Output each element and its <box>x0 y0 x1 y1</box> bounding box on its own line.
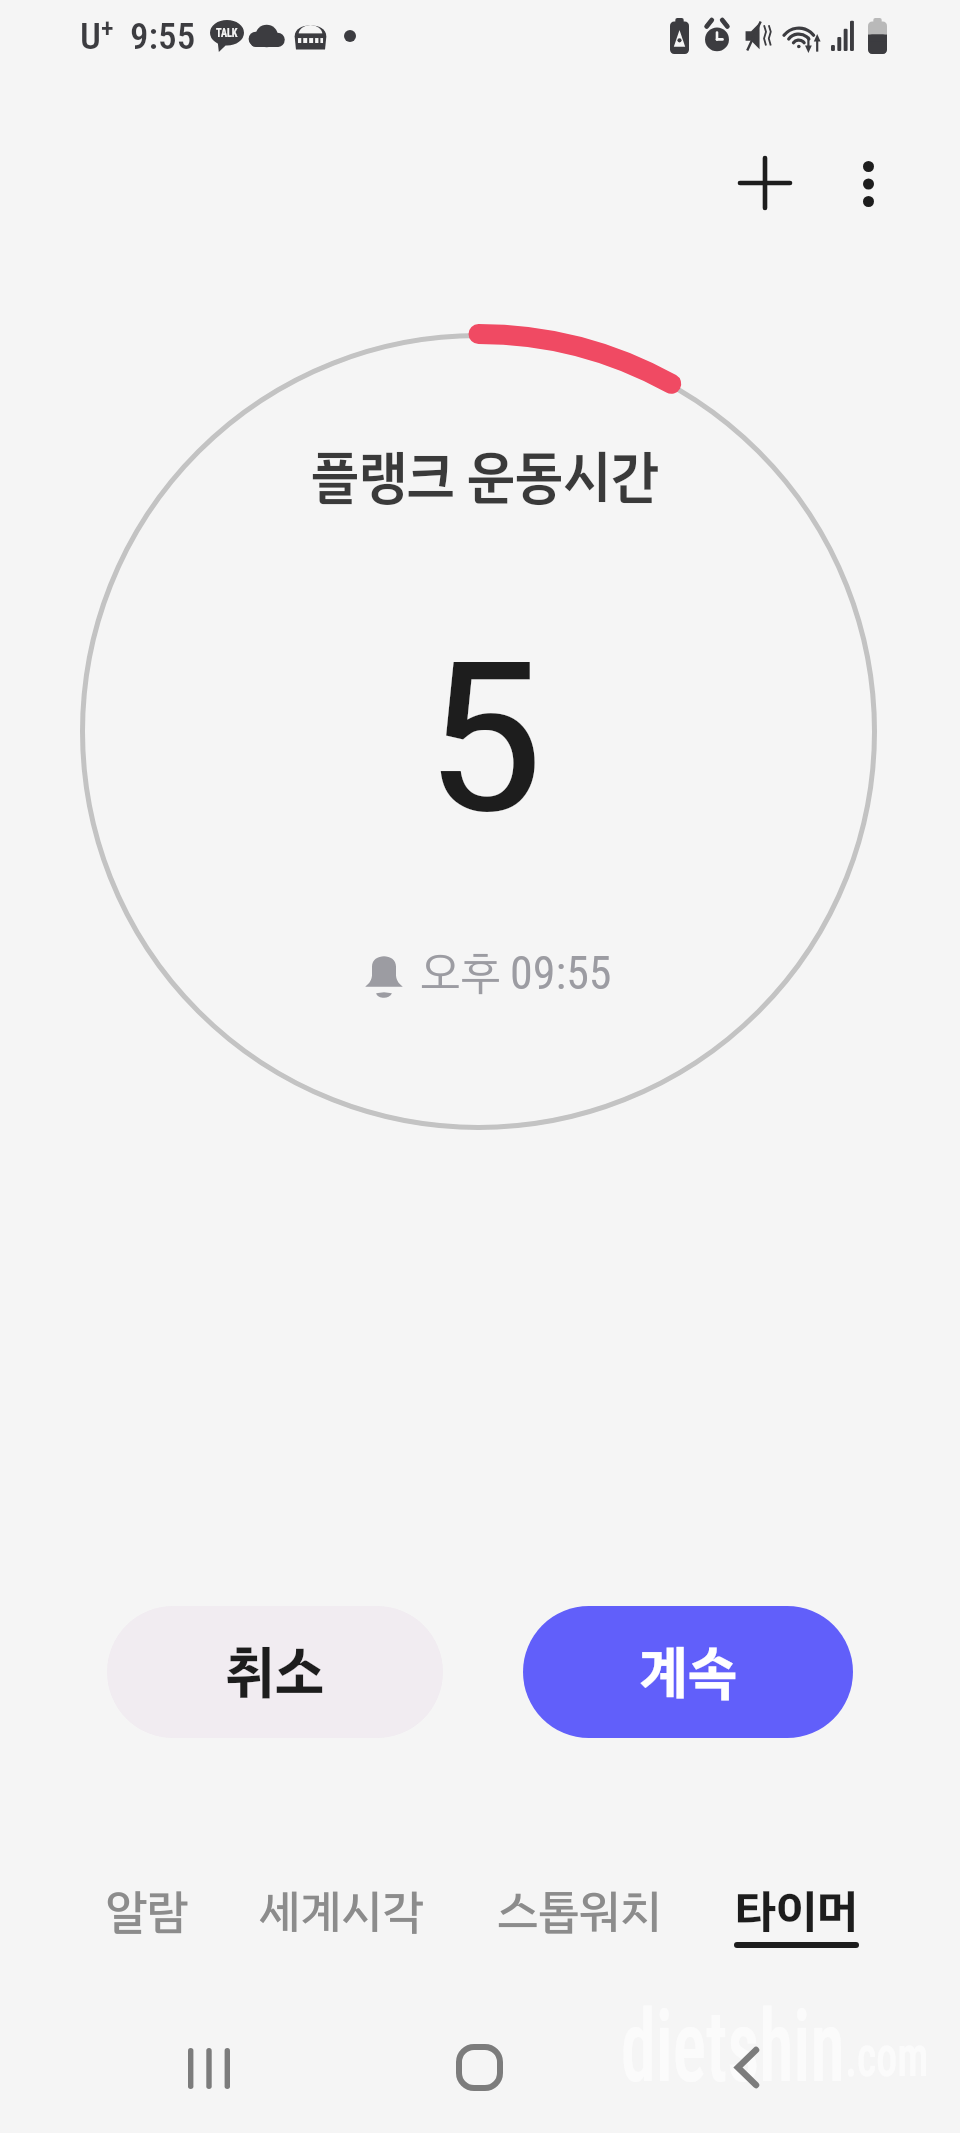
staticText: 09:55 <box>510 946 612 1000</box>
staticText: 플랭크 운동시간 <box>311 434 659 520</box>
staticText: 타이머 <box>735 1877 859 1946</box>
button[interactable]: Add timer <box>709 127 821 239</box>
staticText: 5 <box>423 618 546 861</box>
button[interactable]: 스톱워치 <box>484 1877 674 1977</box>
button[interactable]: 타이머 <box>701 1877 891 1977</box>
button[interactable]: More options <box>812 128 924 240</box>
button[interactable]: 계속 <box>523 1606 853 1738</box>
staticText: dietshin <box>621 1988 845 2105</box>
staticText: U <box>80 15 101 58</box>
staticText: 계속 <box>639 1629 737 1716</box>
button[interactable]: Recent apps <box>153 2012 265 2124</box>
button[interactable]: 세계시각 <box>246 1877 436 1977</box>
button[interactable]: Back <box>691 2011 803 2123</box>
staticText: 세계시각 <box>259 1877 424 1946</box>
staticText: 취소 <box>226 1629 324 1716</box>
button[interactable]: Home <box>423 2011 535 2123</box>
staticText: 9:55 <box>130 15 196 58</box>
button[interactable]: 취소 <box>107 1606 443 1738</box>
staticText: + <box>101 13 114 43</box>
staticText: 알람 <box>106 1877 189 1946</box>
staticText: 스톱워치 <box>497 1877 662 1946</box>
button[interactable]: 알람 <box>52 1877 242 1977</box>
button[interactable]: 플랭크 운동시간 <box>80 333 877 1130</box>
staticText: TALK <box>216 26 238 40</box>
staticText: 오후 <box>420 939 501 1007</box>
